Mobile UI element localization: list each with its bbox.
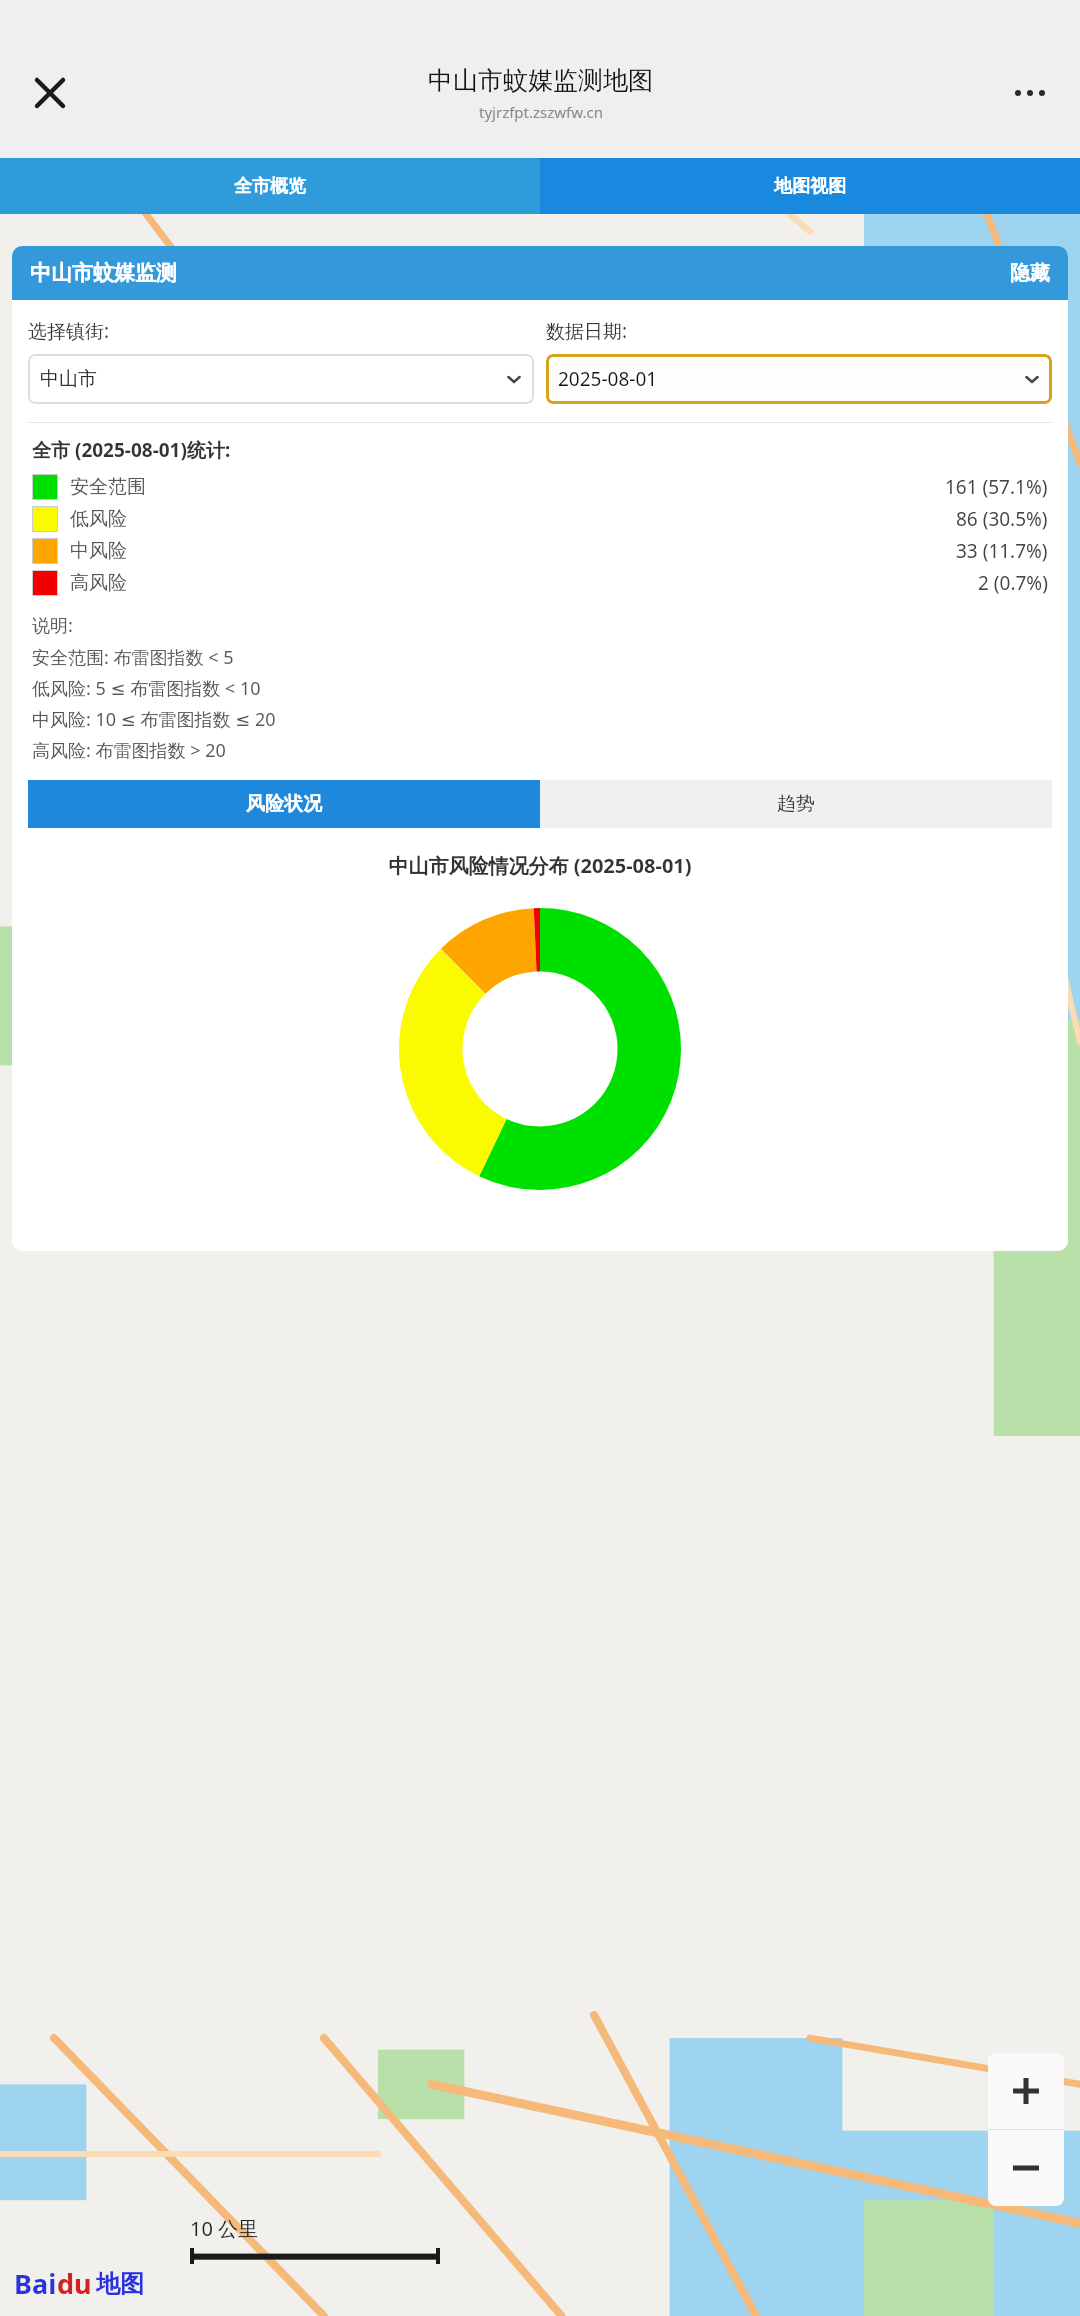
staticText: 隐藏 xyxy=(1010,261,1050,286)
staticText: 10 公里 xyxy=(190,2215,259,2242)
button[interactable]: More options xyxy=(1002,65,1058,121)
button[interactable]: 趋势 xyxy=(540,780,1052,828)
button[interactable]: 中山市 xyxy=(28,354,534,404)
button[interactable]: 风险状况 xyxy=(28,780,540,828)
staticText: 地图 xyxy=(96,2269,144,2299)
button[interactable]: Close xyxy=(22,65,78,121)
staticText: 中风险: 10 ≤ 布雷图指数 ≤ 20 xyxy=(32,707,276,732)
staticText: 中山市风险情况分布 (2025-08-01) xyxy=(12,852,1068,879)
button[interactable]: Zoom in xyxy=(988,2053,1064,2129)
staticText: 风险状况 xyxy=(246,792,322,816)
staticText: 安全范围 xyxy=(70,475,146,499)
staticText: 趋势 xyxy=(777,792,815,816)
staticText: 低风险: 5 ≤ 布雷图指数 < 10 xyxy=(32,676,261,701)
staticText: 33 (11.7%) xyxy=(956,538,1048,564)
button[interactable]: 隐藏 xyxy=(1010,261,1050,286)
button[interactable]: Zoom out xyxy=(988,2130,1064,2206)
staticText: 高风险: 布雷图指数 > 20 xyxy=(32,738,226,763)
staticText: 中风险 xyxy=(70,539,127,563)
staticText: 86 (30.5%) xyxy=(956,506,1048,532)
staticText: Bai xyxy=(14,2265,57,2302)
staticText: 高风险 xyxy=(70,571,127,595)
staticText: 说明: xyxy=(32,613,73,638)
staticText: 选择镇街: xyxy=(28,318,110,344)
staticText: 中山市 xyxy=(40,367,97,391)
staticText: du xyxy=(57,2265,92,2302)
staticText: 161 (57.1%) xyxy=(945,474,1048,500)
button[interactable]: 2025-08-01 xyxy=(546,354,1052,404)
staticText: 2025-08-01 xyxy=(558,366,658,392)
staticText: 中山市蚊媒监测地图 xyxy=(428,65,653,96)
staticText: tyjrzfpt.zszwfw.cn xyxy=(479,102,603,122)
staticText: 地图视图 xyxy=(774,175,846,198)
button[interactable]: 地图视图 xyxy=(540,158,1080,214)
staticText: 全市概览 xyxy=(234,175,306,198)
staticText: 全市 (2025-08-01)统计: xyxy=(32,437,231,463)
staticText: 中山市蚊媒监测 xyxy=(30,260,177,286)
staticText: 安全范围: 布雷图指数 < 5 xyxy=(32,645,234,670)
staticText: 数据日期: xyxy=(546,318,628,344)
staticText: 低风险 xyxy=(70,507,127,531)
staticText: 2 (0.7%) xyxy=(978,570,1048,596)
button[interactable]: 全市概览 xyxy=(0,158,540,214)
